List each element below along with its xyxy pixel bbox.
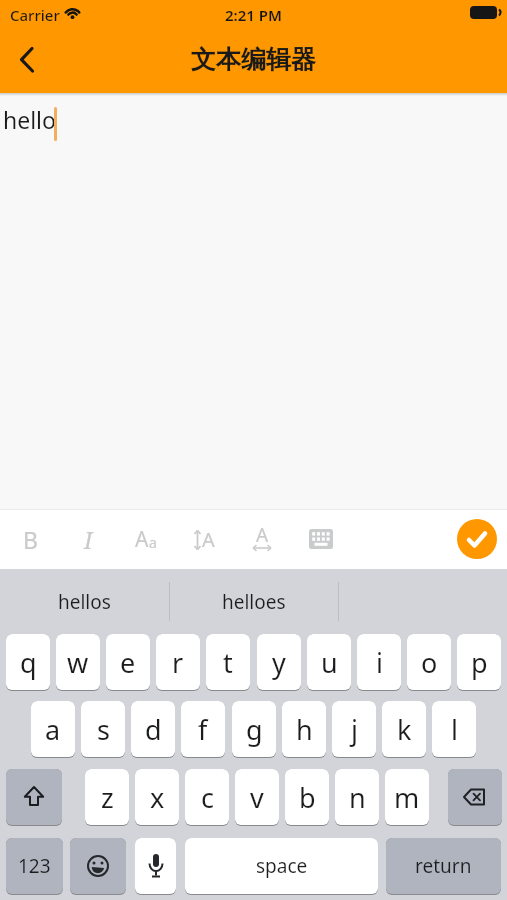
staticText: p [471,644,488,681]
button[interactable]: q [6,634,50,690]
button[interactable]: k [382,701,426,757]
staticText: a [45,711,61,748]
button[interactable]: e [106,634,150,690]
button[interactable] [135,838,176,894]
staticText: z [101,779,114,816]
staticText: v [250,779,264,816]
staticText: r [172,644,184,681]
button[interactable]: t [206,634,250,690]
button[interactable]: o [407,634,451,690]
staticText: u [321,644,338,681]
staticText: i [376,644,383,681]
button[interactable]: A [183,517,225,561]
staticText: 123 [18,853,51,879]
button[interactable]: a [31,701,75,757]
staticText: f [198,711,208,748]
button[interactable]: helloes [169,569,338,634]
staticText: y [272,644,286,681]
button[interactable]: n [335,769,379,825]
button[interactable]: A [125,517,167,561]
staticText: g [246,711,263,748]
button[interactable] [300,517,342,561]
button[interactable]: d [131,701,175,757]
button[interactable]: l [432,701,476,757]
staticText: I [84,524,93,555]
staticText: n [349,779,366,816]
staticText: A [256,522,269,548]
button[interactable] [457,519,497,559]
staticText: A [202,526,215,553]
button[interactable] [6,40,50,84]
button[interactable]: v [235,769,279,825]
staticText: space [256,853,308,879]
button[interactable]: f [181,701,225,757]
button[interactable]: return [386,838,501,894]
staticText: w [67,644,89,681]
button[interactable]: r [156,634,200,690]
staticText: hellos [58,589,111,615]
button[interactable]: z [85,769,129,825]
staticText: k [397,711,412,748]
staticText: a [149,533,157,552]
button[interactable]: s [81,701,125,757]
button[interactable]: i [357,634,401,690]
button[interactable] [6,769,62,825]
button[interactable]: A [241,517,283,561]
staticText: o [421,644,438,681]
button[interactable]: hello [0,93,507,509]
staticText: 2:21 PM [225,5,282,25]
staticText: h [296,711,313,748]
button[interactable] [70,838,126,894]
staticText: d [145,711,162,748]
button[interactable]: m [385,769,429,825]
button[interactable]: hellos [0,569,169,634]
staticText: B [23,524,38,555]
staticText: x [150,779,165,816]
button[interactable]: x [135,769,179,825]
button[interactable]: j [332,701,376,757]
staticText: helloes [222,589,286,615]
staticText: 文本编辑器 [191,44,316,75]
button[interactable]: g [232,701,276,757]
button[interactable]: p [457,634,501,690]
button[interactable]: w [56,634,100,690]
staticText: c [201,779,214,816]
staticText: t [223,644,233,681]
button[interactable]: 123 [6,838,63,894]
button[interactable]: h [282,701,326,757]
staticText: A [135,525,149,554]
staticText: l [451,711,458,748]
staticText: b [299,779,316,816]
button[interactable]: I [67,517,109,561]
button[interactable] [448,769,502,825]
staticText: return [415,853,472,879]
staticText: e [120,644,136,681]
button[interactable]: u [307,634,351,690]
staticText: m [394,779,420,816]
staticText: j [351,711,358,748]
button[interactable]: c [185,769,229,825]
button[interactable]: B [9,517,51,561]
staticText: s [97,711,110,748]
staticText: q [20,644,37,681]
button[interactable]: space [185,838,378,894]
button[interactable]: y [257,634,301,690]
staticText: hello [3,104,56,135]
staticText: Carrier [10,5,60,25]
button[interactable]: b [285,769,329,825]
